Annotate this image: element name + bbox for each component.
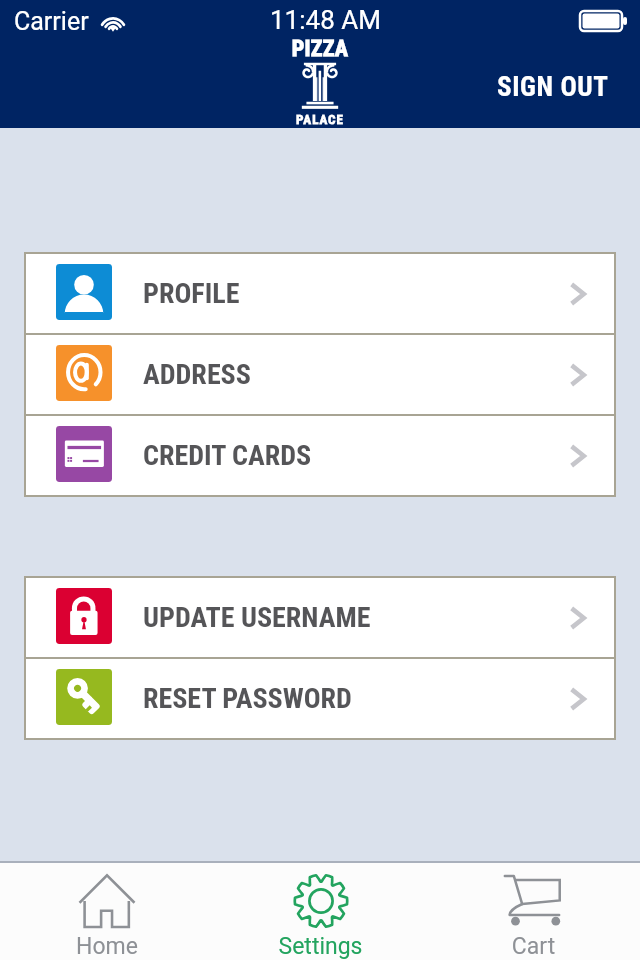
- button[interactable]: Home: [0, 863, 214, 960]
- staticText: Home: [0, 933, 214, 960]
- staticText: CREDIT CARDS: [143, 439, 312, 472]
- staticText: Cart: [427, 933, 640, 960]
- staticText: SIGN OUT: [497, 71, 609, 103]
- staticText: RESET PASSWORD: [143, 682, 352, 715]
- staticText: Settings: [214, 933, 427, 960]
- staticText: PALACE: [285, 112, 355, 127]
- staticText: 11:48 AM: [270, 5, 381, 35]
- button[interactable]: Sign out: [477, 61, 640, 117]
- staticText: UPDATE USERNAME: [143, 601, 371, 634]
- button[interactable]: Cart: [427, 863, 640, 960]
- button[interactable]: CREDIT CARDS: [26, 416, 614, 495]
- staticText: PROFILE: [143, 277, 240, 310]
- button[interactable]: ADDRESS: [26, 335, 614, 414]
- button[interactable]: RESET PASSWORD: [26, 659, 614, 738]
- button[interactable]: Settings: [214, 863, 427, 960]
- button[interactable]: PROFILE: [26, 254, 614, 333]
- staticText: ADDRESS: [143, 358, 251, 391]
- staticText: Carrier: [14, 7, 89, 36]
- staticText: PIZZA: [285, 36, 355, 62]
- button[interactable]: UPDATE USERNAME: [26, 578, 614, 657]
